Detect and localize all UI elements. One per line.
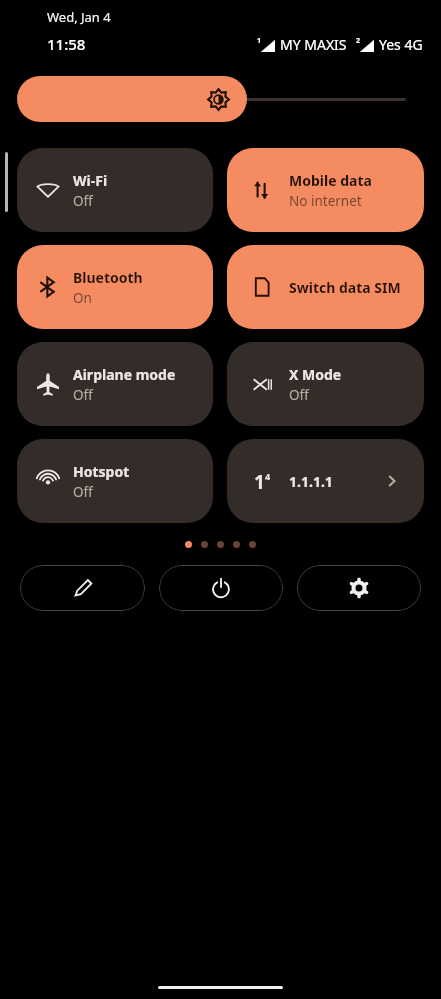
staticText: Wed, Jan 4: [47, 8, 111, 26]
button[interactable]: 1: [227, 439, 424, 523]
button[interactable]: Power: [159, 565, 283, 611]
staticText: 4: [265, 470, 271, 482]
button[interactable]: Edit: [20, 565, 145, 611]
button[interactable]: Airplane mode: [17, 342, 213, 426]
staticText: X Mode: [289, 365, 342, 384]
staticText: Off: [73, 386, 93, 404]
button[interactable]: Wi-Fi: [17, 148, 213, 232]
staticText: MY MAXIS: [280, 35, 347, 54]
staticText: Hotspot: [73, 462, 130, 481]
staticText: Off: [73, 192, 93, 210]
staticText: Off: [73, 483, 93, 501]
staticText: Airplane mode: [73, 365, 176, 384]
staticText: 1.1.1.1: [289, 472, 333, 491]
button[interactable]: Bluetooth: [17, 245, 213, 329]
staticText: Off: [289, 386, 309, 404]
staticText: 1: [257, 36, 262, 46]
staticText: Yes 4G: [379, 35, 423, 54]
staticText: 2: [356, 36, 361, 46]
button[interactable]: Brightness: [17, 76, 424, 122]
staticText: On: [73, 289, 92, 307]
staticText: Wi-Fi: [73, 171, 108, 190]
staticText: 11:58: [47, 34, 86, 54]
staticText: Bluetooth: [73, 268, 143, 287]
staticText: 1: [254, 469, 265, 493]
button[interactable]: Switch data SIM: [227, 245, 424, 329]
staticText: Mobile data: [289, 171, 372, 190]
button[interactable]: Hotspot: [17, 439, 213, 523]
button[interactable]: Mobile data: [227, 148, 424, 232]
button[interactable]: X Mode: [227, 342, 424, 426]
staticText: Switch data SIM: [289, 278, 401, 297]
button[interactable]: Settings: [297, 565, 421, 611]
staticText: No internet: [289, 192, 362, 210]
